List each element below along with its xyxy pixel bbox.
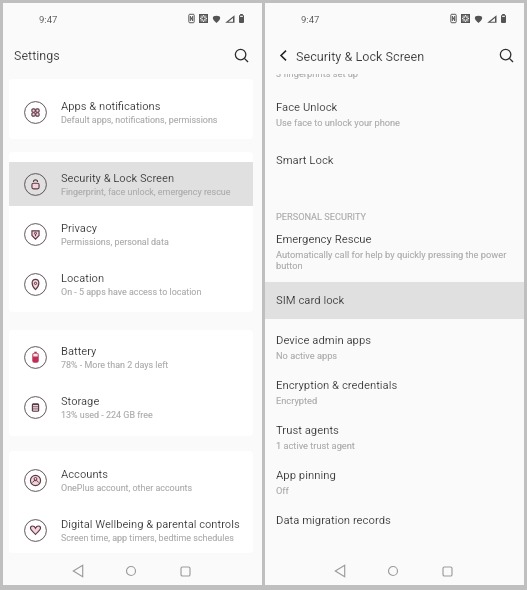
button[interactable]: Encryption & credentials [265, 375, 524, 407]
staticText: Security & Lock Screen [61, 172, 175, 185]
button[interactable]: Apps & notifications [9, 87, 253, 137]
staticText: Encrypted [276, 395, 318, 406]
staticText: Fingerprint, face unlock, emergency resc… [61, 187, 231, 197]
staticText: 78% - More than 2 days left [61, 360, 169, 370]
button[interactable]: Recents [425, 557, 469, 585]
staticText: Battery [61, 345, 97, 358]
staticText: Face Unlock [276, 101, 338, 114]
staticText: OnePlus account, other accounts [61, 483, 193, 493]
button[interactable]: Privacy [9, 209, 253, 259]
button[interactable]: Device admin apps [265, 330, 524, 362]
button[interactable]: Location [9, 259, 253, 309]
button[interactable]: Storage [9, 382, 253, 432]
button[interactable]: Battery [9, 332, 253, 382]
staticText: 9:47 [301, 14, 320, 25]
staticText: Default apps, notifications, permissions [61, 115, 218, 125]
button[interactable]: Back [56, 557, 100, 585]
button[interactable]: Recents [163, 557, 207, 585]
staticText: App pinning [276, 469, 336, 482]
button[interactable]: Trust agents [265, 420, 524, 452]
staticText: Screen time, app timers, bedtime schedul… [61, 533, 234, 543]
staticText: Smart Lock [276, 154, 334, 167]
staticText: On - 5 apps have access to location [61, 287, 202, 297]
staticText: SIM card lock [276, 294, 345, 307]
staticText: 13% used - 224 GB free [61, 410, 153, 420]
staticText: 1 active trust agent [276, 440, 355, 451]
staticText: Privacy [61, 222, 97, 235]
button[interactable]: Smart Lock [265, 150, 524, 171]
staticText: Permissions, personal data [61, 237, 169, 247]
button[interactable]: Emergency Rescue [265, 229, 524, 272]
staticText: Automatically call for help by quickly p… [276, 249, 512, 271]
staticText: Location [61, 272, 105, 285]
button[interactable]: Data migration records [265, 510, 524, 531]
button[interactable]: Home [371, 557, 415, 585]
staticText: Apps & notifications [61, 100, 161, 113]
staticText: Emergency Rescue [276, 233, 372, 246]
staticText: Encryption & credentials [276, 379, 398, 392]
staticText: Accounts [61, 468, 108, 481]
button[interactable]: Security & Lock Screen [9, 159, 253, 209]
staticText: Settings [14, 48, 60, 63]
staticText: 3 fingerprints set up [276, 74, 359, 79]
button[interactable]: App pinning [265, 465, 524, 497]
staticText: 9:47 [39, 14, 58, 25]
button[interactable]: SIM card lock [265, 282, 524, 319]
staticText: Trust agents [276, 424, 339, 437]
button[interactable]: Digital Wellbeing & parental controls [9, 505, 253, 553]
staticText: Off [276, 485, 289, 496]
staticText: Use face to unlock your phone [276, 117, 401, 128]
button[interactable]: Home [109, 557, 153, 585]
staticText: Device admin apps [276, 334, 372, 347]
button[interactable]: Back [318, 557, 362, 585]
staticText: Storage [61, 395, 100, 408]
button[interactable]: Search [495, 44, 519, 68]
staticText: Security & Lock Screen [296, 49, 425, 64]
button[interactable]: Search [230, 44, 254, 68]
staticText: No active apps [276, 350, 338, 361]
staticText: Digital Wellbeing & parental controls [61, 518, 240, 531]
button[interactable]: Back [273, 45, 293, 65]
staticText: Data migration records [276, 514, 391, 527]
staticText: PERSONAL SECURITY [276, 211, 367, 222]
button[interactable]: Accounts [9, 455, 253, 505]
button[interactable]: Face Unlock [265, 97, 524, 129]
